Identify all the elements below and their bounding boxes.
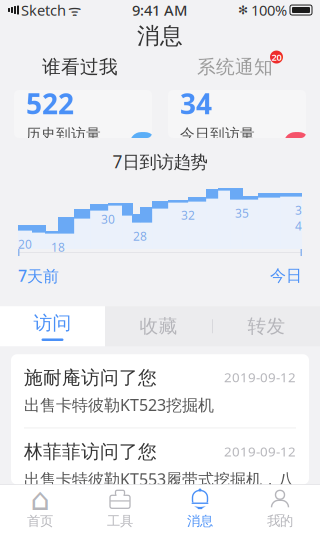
button[interactable]: 工具 — [80, 485, 160, 533]
staticText: 出售卡特彼勒KT523挖掘机 — [24, 394, 214, 415]
staticText: ✻ — [238, 3, 248, 17]
button[interactable]: ⌂ — [0, 485, 80, 533]
staticText: 工具 — [107, 513, 133, 529]
staticText: 系统通知 — [197, 55, 273, 78]
staticText: 2019-09-12 — [224, 368, 296, 386]
staticText: 谁看过我 — [42, 55, 118, 78]
button[interactable]: 我的 — [240, 485, 320, 533]
staticText: 施耐庵访问了您 — [24, 366, 157, 389]
staticText: 出售卡特彼勒KT553履带式挖掘机，八成新，价格面议 — [24, 468, 294, 512]
button[interactable]: 谁看过我 — [0, 52, 160, 82]
button[interactable]: 转发 — [213, 306, 320, 346]
staticText: 9:41 AM — [132, 0, 187, 20]
staticText: 收藏 — [139, 315, 177, 338]
staticText: 34 — [180, 85, 212, 122]
button[interactable]: 34 — [168, 90, 306, 138]
staticText: Sketch — [21, 0, 66, 20]
staticText: 18 — [51, 239, 65, 255]
staticText: 20 — [18, 236, 32, 252]
staticText: 2019-09-12 — [224, 442, 296, 460]
staticText: 消息 — [137, 22, 183, 50]
staticText: 35 — [235, 205, 249, 221]
staticText: 20 — [271, 51, 281, 63]
staticText: 34 — [295, 202, 302, 234]
staticText: 28 — [133, 228, 147, 244]
staticText: 30 — [101, 211, 115, 227]
staticText: 100% — [251, 0, 287, 20]
staticText: ⌂ — [30, 482, 49, 517]
staticText: 522 — [26, 85, 74, 122]
button[interactable]: 访问 — [0, 306, 105, 346]
staticText: 转发 — [247, 315, 285, 338]
staticText: 林菲菲访问了您 — [24, 440, 157, 463]
staticText: 7日到访趋势 — [112, 150, 207, 173]
button[interactable]: 522 — [14, 90, 152, 138]
staticText: 消息 — [187, 513, 213, 529]
staticText: 今日 — [270, 266, 302, 285]
staticText: 今日到访量 — [180, 125, 255, 143]
staticText: 访问 — [33, 312, 71, 334]
staticText: 32 — [181, 207, 195, 223]
button[interactable]: 施耐庵访问了您 — [11, 354, 309, 428]
staticText: 7天前 — [18, 265, 59, 286]
staticText: 首页 — [27, 513, 53, 529]
staticText: 我的 — [267, 513, 293, 529]
button[interactable]: 收藏 — [105, 306, 212, 346]
button[interactable]: 系统通知 — [160, 52, 320, 82]
button[interactable]: 消息 — [160, 485, 240, 533]
staticText: 历史到访量 — [26, 125, 101, 143]
button[interactable]: 林菲菲访问了您 — [11, 428, 309, 525]
staticText: ᯤ — [68, 0, 81, 20]
